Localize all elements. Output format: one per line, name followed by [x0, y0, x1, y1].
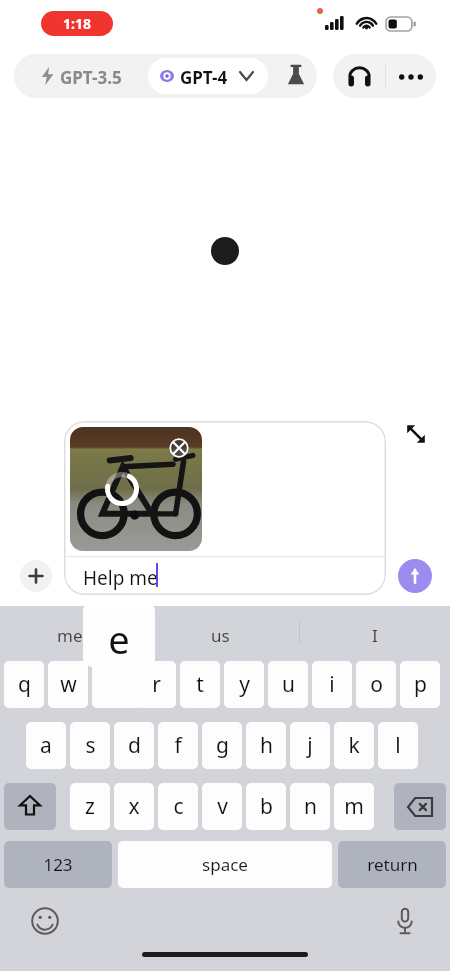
staticText: f [174, 731, 182, 760]
button[interactable]: Dictate [386, 902, 424, 940]
staticText: j [307, 731, 313, 760]
button[interactable]: z [70, 783, 110, 830]
button[interactable]: l [378, 722, 418, 769]
staticText: w [60, 670, 77, 699]
button[interactable]: Emoji [26, 902, 64, 940]
staticText: y [239, 670, 250, 699]
button[interactable]: Add attachment [20, 560, 52, 592]
button[interactable]: Experiments [276, 56, 316, 96]
button[interactable]: Voice conversation [333, 54, 385, 98]
button[interactable]: GPT-4 [148, 58, 268, 94]
button[interactable]: Shift [4, 783, 56, 830]
staticText: n [304, 792, 317, 821]
button[interactable]: Remove attachment [70, 427, 202, 551]
staticText: I [372, 624, 378, 647]
staticText: g [216, 731, 229, 760]
staticText: t [196, 670, 204, 699]
button[interactable]: y [224, 661, 264, 708]
staticText: s [85, 731, 96, 760]
staticText: p [414, 670, 427, 699]
staticText: us [211, 624, 230, 647]
button[interactable]: u [268, 661, 308, 708]
staticText: me [57, 624, 83, 647]
button[interactable]: j [290, 722, 330, 769]
staticText: i [329, 670, 335, 699]
staticText: GPT-4 [180, 66, 228, 89]
button[interactable]: f [158, 722, 198, 769]
button[interactable]: space [118, 841, 332, 888]
button[interactable]: s [70, 722, 110, 769]
staticText: b [260, 792, 273, 821]
staticText: z [85, 792, 95, 821]
button[interactable]: c [158, 783, 198, 830]
button[interactable]: d [114, 722, 154, 769]
button[interactable]: o [356, 661, 396, 708]
button[interactable]: g [202, 722, 242, 769]
button[interactable]: v [202, 783, 242, 830]
button[interactable]: Expand [398, 416, 434, 452]
staticText: x [128, 792, 140, 821]
staticText: l [395, 731, 401, 760]
button[interactable]: k [334, 722, 374, 769]
button[interactable]: m [334, 783, 374, 830]
button[interactable]: h [246, 722, 286, 769]
button[interactable]: n [290, 783, 330, 830]
button[interactable]: b [246, 783, 286, 830]
staticText: q [18, 670, 31, 699]
staticText: GPT-3.5 [60, 66, 122, 89]
staticText: h [260, 731, 273, 760]
staticText: space [202, 853, 248, 876]
staticText: u [282, 670, 295, 699]
staticText: Help me [83, 565, 158, 591]
staticText: return [367, 853, 418, 876]
staticText: 123 [43, 853, 73, 876]
button[interactable]: Send [398, 559, 432, 593]
staticText: r [152, 670, 161, 699]
button[interactable]: t [180, 661, 220, 708]
button[interactable]: w [48, 661, 88, 708]
button[interactable]: q [4, 661, 44, 708]
button[interactable]: r [136, 661, 176, 708]
staticText: m [344, 792, 364, 821]
staticText: c [173, 792, 184, 821]
staticText: d [128, 731, 141, 760]
button[interactable]: Remove attachment [164, 433, 194, 463]
staticText: v [217, 792, 228, 821]
button[interactable]: 123 [4, 841, 112, 888]
button[interactable]: GPT-3.5 [14, 54, 144, 98]
button[interactable]: x [114, 783, 154, 830]
button[interactable]: More options [386, 54, 436, 98]
button[interactable]: return [338, 841, 446, 888]
staticText: o [370, 670, 383, 699]
button[interactable]: p [400, 661, 440, 708]
button[interactable]: i [312, 661, 352, 708]
staticText: 1:18 [63, 14, 91, 33]
staticText: a [40, 731, 52, 760]
button[interactable]: Delete [394, 783, 446, 830]
button[interactable]: a [26, 722, 66, 769]
staticText: e [83, 613, 155, 663]
staticText: k [348, 731, 360, 760]
